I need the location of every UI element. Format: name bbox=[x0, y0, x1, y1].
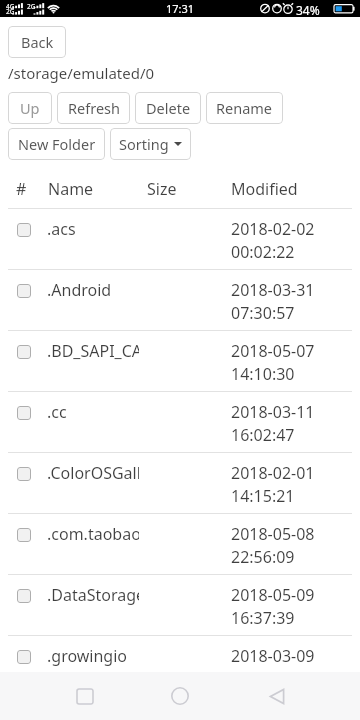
staticText: .Android bbox=[47, 279, 112, 301]
staticText: 22:56:09 bbox=[231, 546, 295, 568]
button[interactable]: Up bbox=[8, 92, 52, 124]
staticText: .com.taobao.dp bbox=[47, 523, 139, 545]
button[interactable]: Select .Android bbox=[8, 270, 352, 330]
button[interactable]: Refresh bbox=[57, 92, 130, 124]
button[interactable]: Select .DataStorage bbox=[8, 575, 352, 635]
button[interactable]: Sorting bbox=[110, 128, 191, 160]
staticText: 2018-02-02 bbox=[231, 218, 315, 240]
staticText: 2G bbox=[6, 7, 15, 16]
staticText: 2018-02-01 bbox=[231, 462, 315, 484]
staticText: Rename bbox=[216, 98, 273, 118]
button[interactable]: Select .Android bbox=[17, 284, 31, 298]
staticText: Delete bbox=[146, 98, 191, 118]
button[interactable]: Rename bbox=[206, 92, 283, 124]
staticText: 2G bbox=[27, 2, 36, 11]
button[interactable]: Back bbox=[8, 26, 66, 58]
button[interactable]: Select .acs bbox=[8, 209, 352, 269]
button[interactable]: Select .cc bbox=[8, 392, 352, 452]
button[interactable]: Select .growingio bbox=[8, 636, 352, 696]
staticText: 2018-03-31 bbox=[231, 279, 315, 301]
staticText: .ColorOSGallery bbox=[47, 462, 139, 484]
staticText: 11:05:13 bbox=[231, 668, 295, 690]
staticText: 2018-05-09 bbox=[231, 584, 315, 606]
staticText: /storage/emulated/0 bbox=[8, 63, 155, 83]
staticText: 4G bbox=[6, 2, 15, 11]
button[interactable]: Select .acs bbox=[17, 223, 31, 237]
staticText: 14:10:30 bbox=[231, 363, 295, 385]
staticText: 07:30:57 bbox=[231, 302, 295, 324]
staticText: 2018-05-07 bbox=[231, 340, 315, 362]
button[interactable]: Select .com.taobao.dp bbox=[17, 528, 31, 542]
staticText: 2018-03-11 bbox=[231, 401, 315, 423]
button[interactable]: Select .BD_SAPI_CACHE bbox=[17, 345, 31, 359]
staticText: .acs bbox=[47, 218, 76, 240]
staticText: Sorting bbox=[119, 134, 169, 154]
button[interactable]: Back bbox=[249, 672, 305, 720]
staticText: New Folder bbox=[18, 134, 96, 154]
staticText: 2018-03-09 bbox=[231, 645, 315, 667]
staticText: Modified bbox=[231, 178, 298, 200]
button[interactable]: Select .ColorOSGallery bbox=[8, 453, 352, 513]
staticText: Back bbox=[21, 32, 54, 52]
staticText: 14:15:21 bbox=[231, 485, 295, 507]
staticText: Refresh bbox=[68, 98, 120, 118]
staticText: .growingio bbox=[47, 645, 128, 667]
button[interactable]: Home bbox=[152, 672, 208, 720]
staticText: .BD_SAPI_CACHE bbox=[47, 340, 139, 362]
staticText: Name bbox=[48, 178, 139, 200]
staticText: .cc bbox=[47, 401, 67, 423]
button[interactable]: Select .DataStorage bbox=[17, 589, 31, 603]
staticText: Size bbox=[147, 178, 223, 200]
button[interactable]: New Folder bbox=[8, 128, 105, 160]
staticText: 00:02:22 bbox=[231, 241, 295, 263]
button[interactable]: Select .cc bbox=[17, 406, 31, 420]
staticText: 17:31 bbox=[166, 1, 195, 16]
staticText: 2018-05-08 bbox=[231, 523, 315, 545]
staticText: 16:37:39 bbox=[231, 607, 295, 629]
staticText: .DataStorage bbox=[47, 584, 139, 606]
button[interactable]: Select .BD_SAPI_CACHE bbox=[8, 331, 352, 391]
staticText: 16:02:47 bbox=[231, 424, 295, 446]
button[interactable]: Delete bbox=[135, 92, 201, 124]
button[interactable]: Select .growingio bbox=[17, 650, 31, 664]
staticText: # bbox=[16, 178, 40, 200]
staticText: 34% bbox=[296, 2, 320, 18]
button[interactable]: Recents bbox=[57, 672, 113, 720]
button[interactable]: Select .ColorOSGallery bbox=[17, 467, 31, 481]
button[interactable]: Select .com.taobao.dp bbox=[8, 514, 352, 574]
staticText: Up bbox=[20, 98, 40, 118]
